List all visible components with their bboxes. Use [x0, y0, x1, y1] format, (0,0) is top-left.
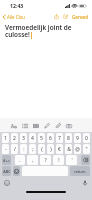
staticText: 3	[22, 135, 25, 142]
button[interactable]: Dictation	[80, 178, 90, 188]
staticText: !	[58, 157, 60, 164]
staticText: #+=	[3, 158, 10, 163]
button[interactable]: Markup	[42, 121, 51, 130]
button[interactable]: return	[70, 166, 90, 176]
button[interactable]: Emoji keyboard	[2, 178, 12, 188]
staticText: 5	[40, 135, 43, 142]
staticText: 8	[67, 135, 70, 142]
staticText: -	[5, 146, 7, 153]
button[interactable]: ?	[40, 155, 51, 165]
staticText: "	[85, 146, 88, 153]
staticText: 6	[49, 135, 52, 142]
button[interactable]: -	[2, 144, 9, 154]
button[interactable]: .	[15, 155, 25, 165]
button[interactable]: '	[66, 155, 77, 165]
staticText: 1	[4, 135, 7, 142]
staticText: &	[67, 146, 71, 153]
staticText: Vermoedelijk joint de	[5, 23, 72, 32]
button[interactable]: 7	[56, 133, 63, 143]
staticText: 2	[13, 135, 16, 142]
button[interactable]: 1	[2, 133, 9, 143]
button[interactable]: @	[74, 144, 81, 154]
button[interactable]: ABC	[2, 166, 11, 176]
staticText: (	[41, 146, 43, 153]
button[interactable]: #+=	[2, 155, 11, 165]
staticText: '	[71, 157, 73, 164]
staticText: 4	[31, 135, 34, 142]
button[interactable]: Camera	[64, 121, 73, 130]
staticText: ;	[32, 146, 34, 153]
staticText: :	[23, 146, 25, 153]
staticText: €	[58, 146, 61, 153]
button[interactable]: Attach	[53, 121, 62, 130]
button[interactable]: !	[53, 155, 64, 165]
button[interactable]: Emoji	[13, 166, 20, 176]
staticText: /	[14, 146, 16, 153]
staticText: ?	[44, 157, 47, 164]
button[interactable]: Share	[52, 12, 61, 21]
button[interactable]: &	[65, 144, 72, 154]
button[interactable]: Table	[31, 121, 40, 130]
button[interactable]: :	[20, 144, 27, 154]
button[interactable]: 3	[20, 133, 27, 143]
button[interactable]: 4	[29, 133, 36, 143]
button[interactable]: ;	[29, 144, 36, 154]
button[interactable]: Backspace	[81, 155, 90, 165]
staticText: @	[75, 146, 80, 153]
staticText: )	[50, 146, 52, 153]
button[interactable]: /	[11, 144, 18, 154]
staticText: return	[74, 169, 86, 174]
button[interactable]: New note	[61, 12, 70, 21]
staticText: ,	[32, 157, 34, 164]
button[interactable]: 8	[65, 133, 72, 143]
button[interactable]: 5	[38, 133, 45, 143]
button[interactable]: Alle Clou	[2, 11, 25, 22]
staticText: 12:43	[10, 2, 24, 9]
button[interactable]: Gereed	[72, 11, 89, 22]
staticText: culosse!	[5, 30, 30, 39]
staticText: 0	[85, 135, 88, 142]
button[interactable]: Checklist	[20, 121, 29, 130]
button[interactable]: 6	[47, 133, 54, 143]
button[interactable]: Text format	[9, 121, 18, 130]
button[interactable]: 9	[74, 133, 81, 143]
button[interactable]: )	[47, 144, 54, 154]
button[interactable]: "	[83, 144, 90, 154]
staticText: ABC	[3, 169, 11, 174]
staticText: 9	[76, 135, 79, 142]
staticText: 7	[58, 135, 61, 142]
button[interactable]: (	[38, 144, 45, 154]
staticText: Alle Clou	[7, 14, 25, 20]
button[interactable]: 0	[83, 133, 90, 143]
button[interactable]: 2	[11, 133, 18, 143]
button[interactable]: €	[56, 144, 63, 154]
staticText: .	[19, 157, 21, 164]
staticText: Gereed	[72, 14, 89, 20]
button[interactable]: ,	[27, 155, 38, 165]
